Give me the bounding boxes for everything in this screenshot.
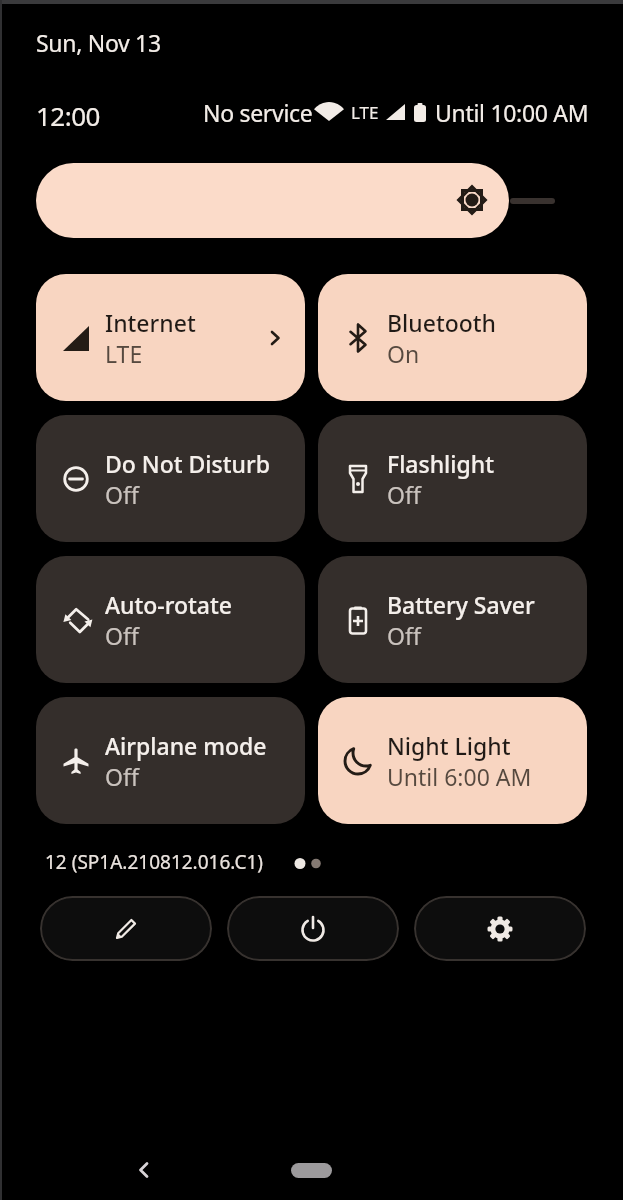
staticText: Internet (105, 307, 196, 338)
staticText: Off (105, 479, 139, 510)
staticText: Off (387, 479, 421, 510)
staticText: Airplane mode (105, 730, 267, 761)
staticText: Off (105, 620, 139, 651)
button[interactable] (40, 896, 212, 961)
staticText: Sun, Nov 13 (36, 27, 161, 58)
staticText: Do Not Disturb (105, 448, 270, 479)
staticText: Auto-rotate (105, 589, 233, 620)
button[interactable]: Do Not Disturb (36, 415, 305, 542)
staticText: Until 6:00 AM (387, 761, 532, 792)
button[interactable]: Flashlight (318, 415, 587, 542)
button[interactable]: Bluetooth (318, 274, 587, 401)
button[interactable]: Internet (36, 274, 305, 401)
staticText: Off (105, 761, 139, 792)
button[interactable] (36, 163, 509, 238)
button[interactable] (128, 1154, 160, 1186)
staticText: Night Light (387, 730, 511, 761)
button[interactable]: Airplane mode (36, 697, 305, 824)
staticText: Bluetooth (387, 307, 497, 338)
staticText: 12:00 (36, 98, 100, 133)
staticText: Until 10:00 AM (435, 97, 589, 128)
staticText: No service (203, 97, 313, 128)
button[interactable]: Auto-rotate (36, 556, 305, 683)
button[interactable] (414, 896, 586, 961)
staticText: On (387, 338, 420, 369)
button[interactable] (227, 896, 399, 961)
staticText: Battery Saver (387, 589, 535, 620)
staticText: Off (387, 620, 421, 651)
staticText: Flashlight (387, 448, 495, 479)
button[interactable]: Battery Saver (318, 556, 587, 683)
button[interactable] (291, 1163, 332, 1178)
staticText: LTE (105, 338, 143, 369)
staticText: LTE (351, 101, 379, 124)
staticText: 12 (SP1A.210812.016.C1) (45, 849, 264, 875)
button[interactable]: Night Light (318, 697, 587, 824)
